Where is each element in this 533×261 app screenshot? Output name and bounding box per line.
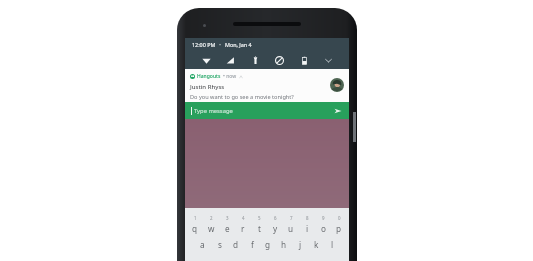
staticText: 1 bbox=[194, 215, 197, 221]
staticText: 9 bbox=[322, 215, 325, 221]
button[interactable]: u bbox=[283, 221, 299, 236]
button[interactable]: Hangouts bbox=[185, 69, 349, 102]
button[interactable]: l bbox=[324, 236, 340, 253]
staticText: Justin Rhyss bbox=[190, 83, 225, 91]
button[interactable]: d bbox=[228, 236, 244, 253]
staticText: i bbox=[306, 223, 309, 234]
staticText: p bbox=[336, 223, 342, 234]
staticText: y bbox=[273, 223, 278, 234]
staticText: Hangouts bbox=[197, 73, 221, 80]
staticText: 2 bbox=[210, 215, 213, 221]
button[interactable]: Battery bbox=[296, 52, 312, 68]
staticText: u bbox=[288, 223, 294, 234]
staticText: 8 bbox=[306, 215, 309, 221]
staticText: w bbox=[208, 223, 215, 234]
staticText: h bbox=[281, 239, 287, 250]
button[interactable]: f bbox=[244, 236, 260, 253]
button[interactable]: s bbox=[211, 236, 228, 253]
staticText: o bbox=[321, 223, 326, 234]
button[interactable]: Do not disturb bbox=[271, 52, 287, 68]
staticText: e bbox=[225, 223, 230, 234]
button[interactable]: e bbox=[219, 221, 235, 236]
staticText: j bbox=[299, 239, 302, 250]
button[interactable]: Type message bbox=[185, 102, 349, 119]
button[interactable]: Send bbox=[332, 105, 343, 116]
staticText: 5 bbox=[258, 215, 261, 221]
staticText: 3 bbox=[226, 215, 229, 221]
staticText: 0 bbox=[338, 215, 341, 221]
staticText: 6 bbox=[274, 215, 277, 221]
staticText: g bbox=[265, 239, 271, 250]
button[interactable]: r bbox=[235, 221, 251, 236]
button[interactable]: Wi-Fi bbox=[198, 52, 214, 68]
button[interactable]: o bbox=[315, 221, 331, 236]
staticText: Do you want to go see a movie tonight? bbox=[190, 93, 294, 101]
staticText: q bbox=[192, 223, 198, 234]
staticText: d bbox=[233, 239, 239, 250]
staticText: • bbox=[219, 41, 222, 48]
staticText: l bbox=[331, 239, 334, 250]
button[interactable]: Mobile signal bbox=[222, 52, 238, 68]
staticText: Mon, Jan 4 bbox=[225, 41, 252, 48]
staticText: t bbox=[258, 223, 261, 234]
staticText: Type message bbox=[194, 107, 233, 115]
button[interactable]: j bbox=[292, 236, 308, 253]
staticText: 7 bbox=[290, 215, 293, 221]
button[interactable]: w bbox=[203, 221, 219, 236]
button[interactable]: p bbox=[331, 221, 347, 236]
staticText: r bbox=[241, 223, 245, 234]
button[interactable]: i bbox=[299, 221, 315, 236]
staticText: k bbox=[314, 239, 319, 250]
staticText: • now bbox=[223, 73, 237, 80]
button[interactable]: t bbox=[251, 221, 267, 236]
staticText: 12:00 PM bbox=[192, 41, 216, 48]
button[interactable]: a bbox=[194, 236, 211, 253]
button[interactable]: h bbox=[276, 236, 292, 253]
button[interactable]: Expand quick settings bbox=[320, 52, 336, 68]
button[interactable]: k bbox=[308, 236, 324, 253]
staticText: s bbox=[218, 239, 222, 250]
staticText: a bbox=[200, 239, 205, 250]
staticText: f bbox=[251, 239, 254, 250]
button[interactable]: g bbox=[260, 236, 276, 253]
button[interactable]: y bbox=[267, 221, 283, 236]
staticText: 4 bbox=[242, 215, 245, 221]
button[interactable]: q bbox=[187, 221, 203, 236]
button[interactable]: Flashlight bbox=[247, 52, 263, 68]
